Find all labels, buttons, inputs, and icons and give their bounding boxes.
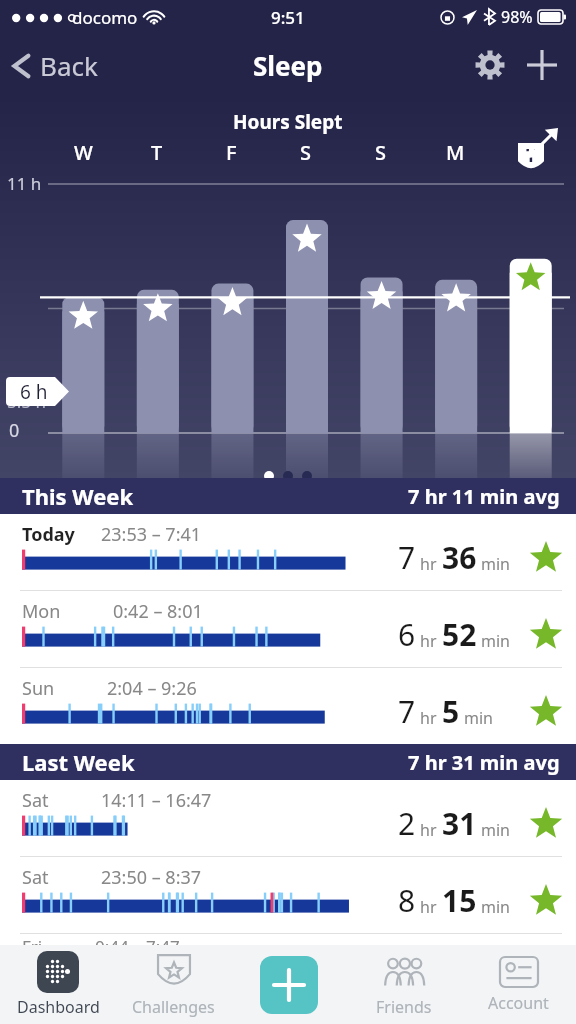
button[interactable]: Sun bbox=[0, 668, 576, 744]
staticText: 0:42 – 8:01 bbox=[113, 599, 203, 624]
staticText: 23:53 – 7:41 bbox=[101, 522, 202, 547]
button[interactable]: Today bbox=[0, 514, 576, 590]
staticText: 6 bbox=[398, 614, 416, 655]
staticText: T bbox=[151, 139, 163, 166]
staticText: Sat bbox=[22, 788, 49, 813]
staticText: Back bbox=[40, 48, 98, 83]
staticText: hr bbox=[420, 896, 437, 918]
staticText: 5 bbox=[442, 691, 460, 732]
staticText: 52 bbox=[442, 614, 477, 655]
staticText: Today bbox=[22, 522, 75, 547]
staticText: 6 h bbox=[20, 379, 48, 405]
button[interactable]: Back bbox=[0, 40, 110, 91]
button[interactable]: Mon bbox=[0, 591, 576, 667]
staticText: 9:51 bbox=[271, 6, 305, 29]
staticText: S bbox=[300, 139, 311, 166]
staticText: 8 bbox=[398, 880, 416, 921]
staticText: hr bbox=[420, 553, 437, 575]
staticText: min bbox=[464, 707, 493, 729]
button[interactable]: Fri bbox=[0, 934, 576, 945]
staticText: 2:04 – 9:26 bbox=[107, 676, 197, 701]
staticText: This Week bbox=[22, 481, 134, 511]
staticText: Dashboard bbox=[17, 996, 100, 1018]
staticText: 98% bbox=[501, 6, 533, 28]
staticText: hr bbox=[420, 819, 437, 841]
button[interactable]: Settings bbox=[464, 39, 516, 91]
button[interactable]: Add sleep log bbox=[516, 39, 568, 91]
staticText: Sat bbox=[22, 865, 49, 890]
staticText: 36 bbox=[442, 537, 477, 578]
button[interactable]: Friends bbox=[346, 945, 461, 1024]
button[interactable]: Challenges bbox=[116, 945, 231, 1024]
button[interactable]: Add bbox=[260, 956, 318, 1014]
button[interactable]: Last Week bbox=[0, 744, 576, 780]
staticText: W bbox=[74, 139, 93, 166]
button[interactable]: Account bbox=[461, 945, 576, 1024]
staticText: Fri bbox=[22, 935, 43, 945]
staticText: M bbox=[446, 139, 465, 166]
staticText: F bbox=[226, 139, 237, 166]
staticText: Challenges bbox=[132, 996, 215, 1018]
staticText: 0 bbox=[9, 418, 20, 443]
button[interactable]: This Week bbox=[0, 478, 576, 514]
staticText: 2 bbox=[398, 803, 416, 844]
staticText: min bbox=[481, 553, 510, 575]
button[interactable]: Sat bbox=[0, 857, 576, 933]
staticText: 14:11 – 16:47 bbox=[101, 788, 212, 813]
staticText: 7 hr 31 min avg bbox=[408, 749, 560, 776]
staticText: Sleep bbox=[253, 48, 323, 83]
staticText: Sun bbox=[22, 676, 55, 701]
staticText: 31 bbox=[442, 803, 477, 844]
button[interactable]: Expand chart bbox=[518, 118, 568, 168]
staticText: hr bbox=[420, 707, 437, 729]
button[interactable]: Sat bbox=[0, 780, 576, 856]
staticText: hr bbox=[420, 630, 437, 652]
staticText: Last Week bbox=[22, 747, 135, 777]
staticText: min bbox=[481, 896, 510, 918]
staticText: Account bbox=[488, 992, 549, 1014]
staticText: 23:50 – 8:37 bbox=[101, 865, 202, 890]
staticText: 7 bbox=[398, 537, 416, 578]
staticText: 11 h bbox=[7, 172, 42, 195]
staticText: docomo bbox=[72, 6, 138, 29]
staticText: Friends bbox=[376, 996, 432, 1018]
staticText: 7 bbox=[398, 691, 416, 732]
staticText: 5.5 h bbox=[7, 390, 46, 413]
staticText: Hours Slept bbox=[233, 109, 343, 135]
staticText: 7 hr 11 min avg bbox=[408, 483, 560, 510]
staticText: Mon bbox=[22, 599, 61, 624]
button[interactable]: Dashboard bbox=[0, 945, 116, 1024]
staticText: 15 bbox=[442, 880, 477, 921]
staticText: 0:44 – 7:47 bbox=[95, 935, 180, 945]
staticText: min bbox=[481, 630, 510, 652]
staticText: min bbox=[481, 819, 510, 841]
staticText: T bbox=[526, 144, 536, 167]
staticText: S bbox=[375, 139, 386, 166]
